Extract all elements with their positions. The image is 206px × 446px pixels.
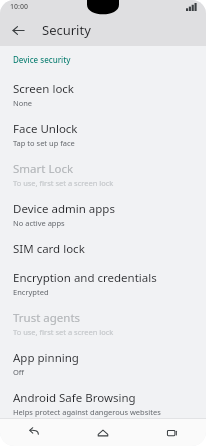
staticText: Trust agents <box>13 310 81 326</box>
staticText: Device security <box>13 54 71 65</box>
button[interactable]: App pinning <box>0 344 206 384</box>
staticText: None <box>13 98 33 108</box>
staticText: To use, first set a screen lock <box>13 178 114 188</box>
staticText: Smart Lock <box>13 161 74 177</box>
staticText: Screen lock <box>13 81 75 97</box>
button[interactable]: Smart Lock <box>0 155 206 195</box>
button[interactable]: Face Unlock <box>0 115 206 155</box>
button[interactable]: Back <box>0 419 68 446</box>
staticText: Android Safe Browsing <box>13 390 136 406</box>
staticText: To use, first set a screen lock <box>13 327 114 337</box>
button[interactable]: SIM card lock <box>0 235 206 264</box>
staticText: No active apps <box>13 218 65 228</box>
button[interactable]: Home <box>68 419 137 446</box>
button[interactable]: Encryption and credentials <box>0 264 206 304</box>
staticText: Off <box>13 367 25 377</box>
staticText: App pinning <box>13 350 79 366</box>
button[interactable]: Recents <box>137 419 206 446</box>
staticText: Helps protect against dangerous websites <box>13 407 161 417</box>
button[interactable]: Back <box>4 16 32 44</box>
staticText: Tap to set up face <box>13 138 75 148</box>
staticText: 10:00 <box>10 2 28 12</box>
staticText: Device admin apps <box>13 201 115 217</box>
button[interactable]: Device admin apps <box>0 195 206 235</box>
button[interactable]: Android Safe Browsing <box>0 384 206 424</box>
staticText: Encrypted <box>13 287 49 297</box>
staticText: SIM card lock <box>13 241 85 257</box>
staticText: Encryption and credentials <box>13 270 157 286</box>
button[interactable]: Trust agents <box>0 304 206 344</box>
staticText: Face Unlock <box>13 121 78 137</box>
staticText: Security <box>42 21 91 39</box>
button[interactable]: Screen lock <box>0 75 206 115</box>
